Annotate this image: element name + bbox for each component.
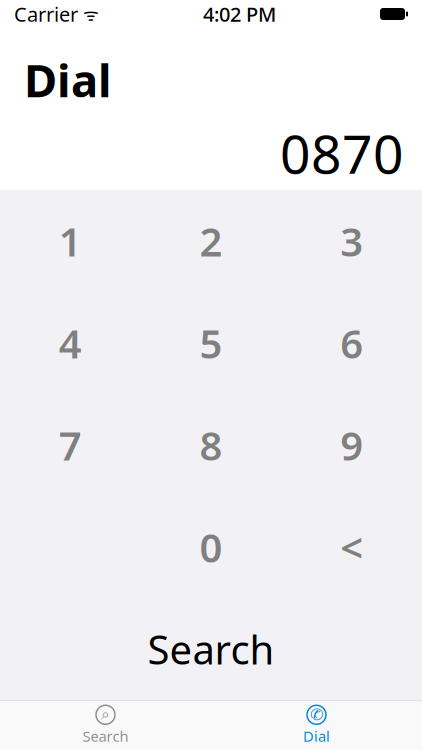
button[interactable]: 2	[141, 190, 281, 292]
button[interactable]: 9	[281, 394, 422, 496]
button[interactable]: 7	[0, 394, 141, 496]
staticText: 9	[340, 418, 363, 471]
staticText: Dial	[303, 726, 330, 746]
staticText: 8	[199, 418, 222, 471]
button[interactable]: ⌕	[0, 701, 211, 750]
button[interactable]: Delete	[281, 496, 422, 598]
staticText: Dial	[24, 49, 112, 110]
button[interactable]: Search	[0, 598, 422, 700]
staticText: 2	[199, 214, 222, 267]
button[interactable]: 1	[0, 190, 141, 292]
staticText: 0	[199, 520, 222, 573]
button[interactable]: 6	[281, 292, 422, 394]
button[interactable]: ✆	[211, 701, 422, 750]
button[interactable]: 0	[141, 496, 281, 598]
staticText: Search	[147, 622, 274, 675]
staticText: 4:02 PM	[203, 1, 276, 27]
staticText: 5	[199, 316, 222, 369]
staticText: 0870	[280, 118, 404, 188]
staticText: 4	[59, 316, 82, 369]
button[interactable]: 5	[141, 292, 281, 394]
button[interactable]: 4	[0, 292, 141, 394]
staticText: 6	[340, 316, 363, 369]
button[interactable]: 8	[141, 394, 281, 496]
staticText: Carrier	[14, 1, 78, 27]
staticText: <	[340, 520, 363, 573]
button[interactable]: 3	[281, 190, 422, 292]
staticText: ⌕	[101, 707, 110, 723]
staticText: 3	[340, 214, 363, 267]
staticText: 1	[59, 214, 82, 267]
staticText: ᯤ	[78, 2, 99, 25]
staticText: Search	[82, 726, 128, 746]
staticText: ✆	[310, 706, 323, 724]
staticText: 7	[59, 418, 82, 471]
